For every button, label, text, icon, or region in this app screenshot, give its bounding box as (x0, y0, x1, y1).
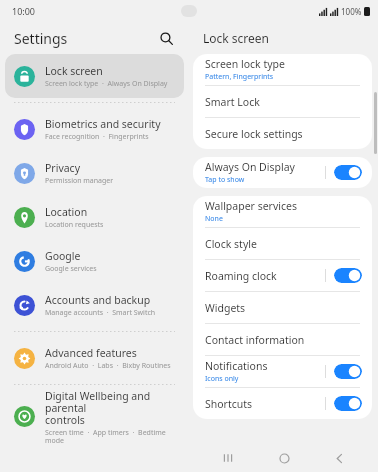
button[interactable]: Search (153, 25, 179, 51)
button[interactable]: Lock screen (5, 54, 184, 98)
staticText: Smart Lock (205, 95, 260, 109)
button[interactable]: Wallpaper services (193, 196, 372, 227)
button[interactable]: Google (5, 239, 184, 283)
staticText: Manage accounts · Smart Switch (45, 308, 156, 318)
staticText: Secure lock settings (205, 127, 303, 141)
button[interactable]: Roaming clock toggle (334, 268, 362, 283)
button[interactable]: Accounts and backup (5, 283, 184, 327)
staticText: Digital Wellbeing and parental controls (45, 389, 178, 427)
staticText: Icons only (205, 374, 239, 384)
staticText: Lock screen (45, 64, 103, 78)
button[interactable]: Notifications toggle (334, 364, 362, 379)
staticText: Screen time · App timers · Bedtime mode (45, 428, 178, 443)
button[interactable]: Widgets (193, 292, 372, 323)
staticText: Clock style (205, 237, 257, 251)
staticText: Roaming clock (205, 269, 277, 283)
staticText: Notifications (205, 359, 268, 373)
button[interactable]: Notifications (193, 356, 372, 387)
button[interactable]: Location (5, 195, 184, 239)
staticText: Google services (45, 264, 97, 274)
staticText: Lock screen (203, 30, 270, 46)
staticText: Shortcuts (205, 397, 253, 411)
button[interactable]: Shortcuts toggle (334, 396, 362, 411)
button[interactable]: Advanced features (5, 336, 184, 380)
staticText: Contact information (205, 333, 305, 347)
staticText: Advanced features (45, 346, 137, 360)
staticText: Settings (14, 29, 68, 48)
staticText: Location requests (45, 220, 104, 230)
staticText: Face recognition · Fingerprints (45, 132, 149, 142)
staticText: Accounts and backup (45, 293, 151, 307)
staticText: Permission manager (45, 176, 114, 186)
staticText: None (205, 214, 223, 224)
button[interactable]: Privacy (5, 151, 184, 195)
staticText: Screen lock type · Always On Display (45, 79, 168, 89)
staticText: Widgets (205, 301, 246, 315)
staticText: 100% (341, 6, 362, 17)
staticText: Google (45, 249, 81, 263)
staticText: 10:00 (12, 5, 36, 17)
button[interactable]: Always On Display toggle (334, 165, 362, 180)
button[interactable]: Back (322, 444, 356, 472)
staticText: Biometrics and security (45, 117, 161, 131)
button[interactable]: Clock style (193, 228, 372, 259)
button[interactable]: Shortcuts (193, 388, 372, 419)
button[interactable]: Digital Wellbeing and parental controls (5, 389, 184, 443)
staticText: Location (45, 205, 88, 219)
staticText: Wallpaper services (205, 199, 297, 213)
staticText: Screen lock type (205, 57, 285, 71)
staticText: Tap to show (205, 175, 245, 185)
button[interactable]: Always On Display (193, 157, 372, 188)
button[interactable]: Biometrics and security (5, 107, 184, 151)
button[interactable]: Home (267, 444, 301, 472)
button[interactable]: Roaming clock (193, 260, 372, 291)
staticText: Android Auto · Labs · Bixby Routines (45, 361, 171, 371)
staticText: Pattern, Fingerprints (205, 72, 274, 82)
button[interactable]: Secure lock settings (193, 118, 372, 149)
staticText: Privacy (45, 161, 81, 175)
button[interactable]: Smart Lock (193, 86, 372, 117)
button[interactable]: Recents (211, 444, 245, 472)
staticText: Always On Display (205, 160, 295, 174)
button[interactable]: Contact information (193, 324, 372, 355)
button[interactable]: Screen lock type (193, 54, 372, 85)
